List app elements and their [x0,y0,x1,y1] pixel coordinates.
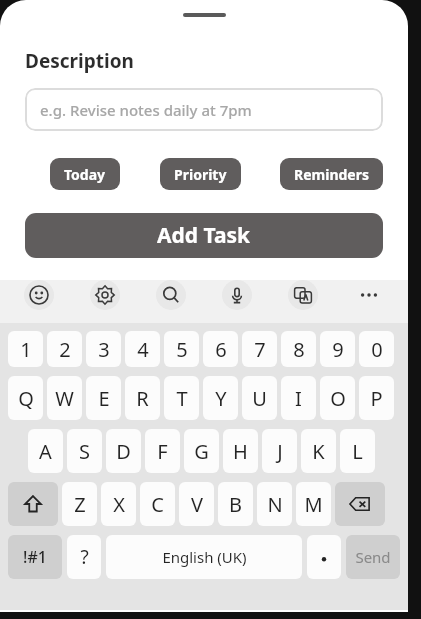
button[interactable]: Backspace [335,482,385,526]
staticText: 6 [215,336,227,363]
button[interactable]: Reminders [280,158,383,190]
button[interactable]: 9 [320,331,355,367]
button[interactable]: More options [354,280,384,310]
staticText: Z [74,491,86,518]
staticText: Priority [174,165,227,184]
button[interactable]: G [184,429,219,473]
button[interactable]: 4 [125,331,160,367]
button[interactable]: 2 [47,331,82,367]
button[interactable]: P [359,376,394,420]
staticText: D [116,438,131,465]
staticText: Q [18,385,34,412]
other: Shift [22,493,44,515]
staticText: X [113,491,125,518]
staticText: K [312,438,325,465]
button[interactable]: R [125,376,160,420]
button[interactable]: Settings [90,280,120,310]
staticText: English (UK) [162,547,247,567]
staticText: C [151,491,164,518]
button[interactable]: I [281,376,316,420]
button[interactable]: Shift [8,482,58,526]
button[interactable]: E [86,376,121,420]
staticText: ? [80,544,89,570]
staticText: I [295,385,302,412]
staticText: G [194,438,209,465]
staticText: Add Task [157,221,251,250]
button[interactable]: 5 [164,331,199,367]
button[interactable]: T [164,376,199,420]
button[interactable]: 0 [359,331,394,367]
staticText: Y [215,385,227,412]
staticText: N [267,491,283,518]
staticText: Send [355,547,391,567]
button[interactable]: 6 [203,331,238,367]
button[interactable]: N [257,482,292,526]
staticText: 1 [20,336,32,363]
staticText: V [191,491,203,518]
staticText: 3 [98,336,110,363]
staticText: U [252,385,267,412]
button[interactable]: 7 [242,331,277,367]
staticText: 7 [254,336,266,363]
button[interactable]: 1 [8,331,43,367]
staticText: T [176,385,188,412]
staticText: 9 [332,336,344,363]
staticText: Today [64,165,106,184]
button[interactable]: Z [62,482,97,526]
button[interactable]: D [106,429,141,473]
staticText: H [233,438,248,465]
button[interactable]: Y [203,376,238,420]
button[interactable]: V [179,482,214,526]
button[interactable]: !#1 [8,535,62,579]
button[interactable]: Q [8,376,43,420]
button[interactable]: 8 [281,331,316,367]
staticText: J [277,438,283,465]
button[interactable]: J [262,429,297,473]
staticText: 8 [293,336,305,363]
staticText: P [370,385,383,412]
button[interactable]: English (UK) [106,535,302,579]
button[interactable]: Translate [288,280,318,310]
button[interactable]: ? [67,535,101,579]
button[interactable]: Add Task [25,213,383,258]
staticText: M [304,491,323,518]
button[interactable]: F [145,429,180,473]
button[interactable]: S [67,429,102,473]
button[interactable]: L [340,429,375,473]
staticText: Reminders [294,165,369,184]
button[interactable]: U [242,376,277,420]
staticText: O [330,385,346,412]
button[interactable]: Search [156,280,186,310]
staticText: W [55,385,74,412]
button[interactable]: K [301,429,336,473]
button[interactable]: A [28,429,63,473]
button[interactable]: O [320,376,355,420]
staticText: !#1 [23,546,47,568]
staticText: L [352,438,363,465]
button[interactable]: e.g. Revise notes daily at 7pm [25,88,383,131]
staticText: B [229,491,242,518]
staticText: 4 [137,336,149,363]
staticText: 2 [59,336,71,363]
staticText: e.g. Revise notes daily at 7pm [40,100,252,120]
other: Backspace [348,492,372,516]
button[interactable]: H [223,429,258,473]
button[interactable]: Today [50,158,120,190]
staticText: A [39,438,52,465]
button[interactable]: Voice input [222,280,252,310]
button[interactable]: M [296,482,331,526]
staticText: E [98,385,110,412]
staticText: S [79,438,90,465]
button[interactable]: W [47,376,82,420]
button[interactable]: Send [346,535,400,579]
button[interactable]: B [218,482,253,526]
staticText: F [157,438,168,465]
button[interactable]: 3 [86,331,121,367]
staticText: 5 [176,336,188,363]
button[interactable]: X [101,482,136,526]
button[interactable]: C [140,482,175,526]
staticText: Description [25,48,134,74]
button[interactable] [307,535,341,579]
button[interactable]: Emoji [24,280,54,310]
button[interactable]: Priority [160,158,241,190]
